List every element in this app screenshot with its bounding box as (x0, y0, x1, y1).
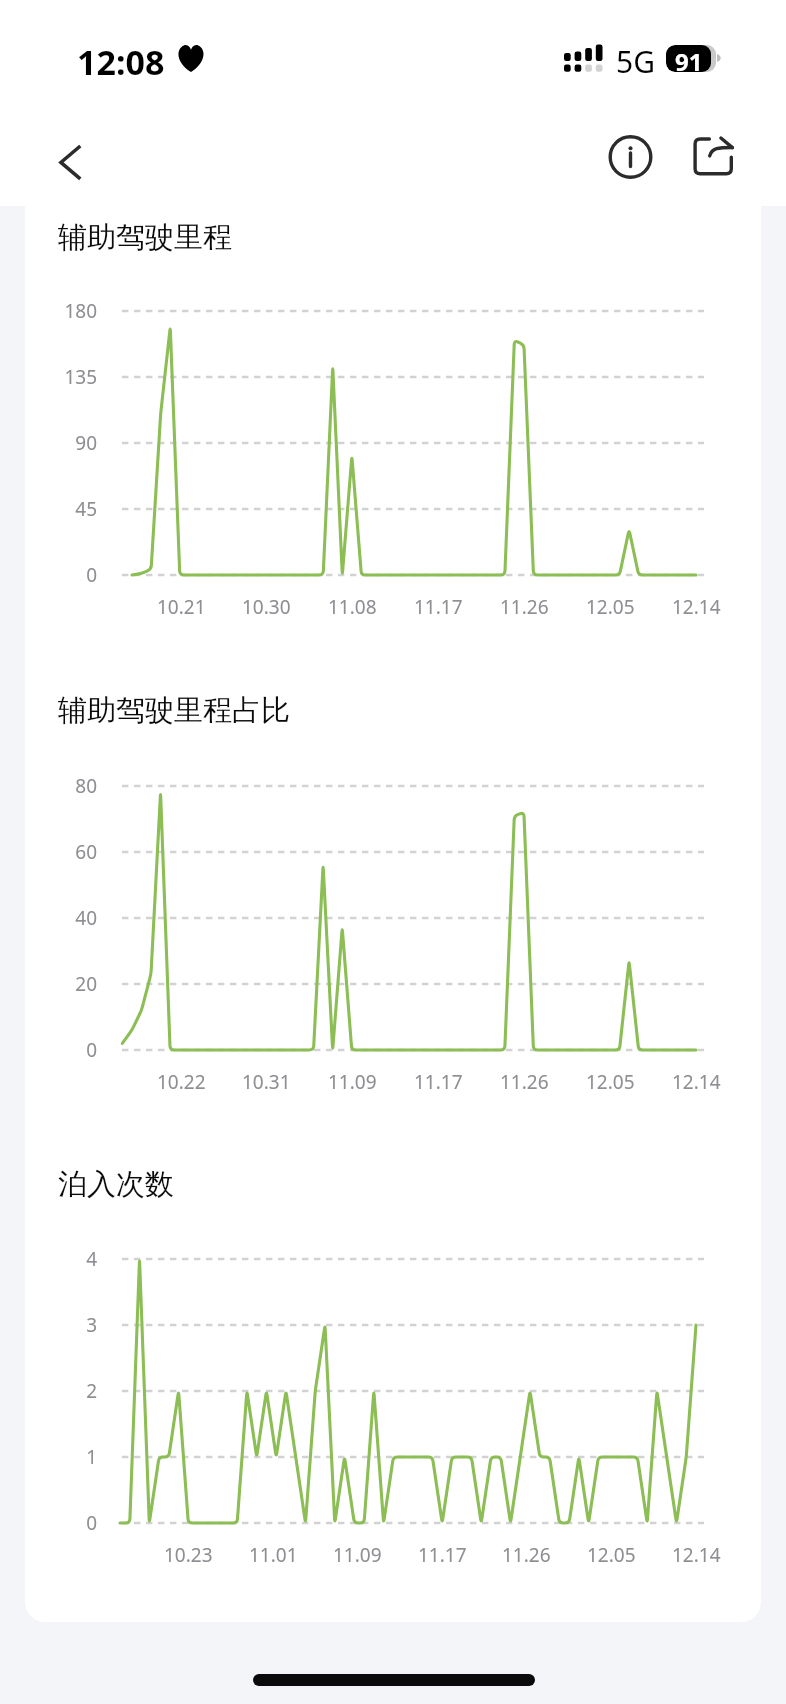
staticText: 45 (75, 496, 97, 522)
staticText: 辅助驾驶里程 (58, 219, 232, 256)
button[interactable]: Back (38, 130, 94, 194)
staticText: 0 (86, 562, 97, 588)
staticText: 12.14 (672, 594, 721, 620)
staticText: 4 (86, 1246, 97, 1272)
staticText: 12.05 (587, 1542, 636, 1568)
staticText: 2 (86, 1378, 97, 1404)
staticText: 11.17 (414, 594, 463, 620)
staticText: 10.21 (157, 594, 206, 620)
staticText: 20 (75, 971, 97, 997)
staticText: 12.14 (672, 1069, 721, 1095)
staticText: 11.09 (328, 1069, 377, 1095)
staticText: 60 (75, 839, 97, 865)
staticText: 90 (75, 430, 97, 456)
staticText: 1 (86, 1444, 97, 1470)
staticText: 泊入次数 (58, 1166, 174, 1203)
staticText: 11.26 (502, 1542, 551, 1568)
staticText: 10.23 (164, 1542, 213, 1568)
staticText: 10.31 (242, 1069, 291, 1095)
staticText: 11.09 (333, 1542, 382, 1568)
staticText: 40 (75, 905, 97, 931)
staticText: 80 (75, 773, 97, 799)
staticText: 11.17 (414, 1069, 463, 1095)
staticText: 10.22 (157, 1069, 206, 1095)
staticText: 135 (64, 364, 97, 390)
staticText: 12.14 (672, 1542, 721, 1568)
staticText: 0 (86, 1510, 97, 1536)
staticText: 辅助驾驶里程占比 (58, 692, 290, 729)
staticText: 11.17 (418, 1542, 467, 1568)
staticText: 91 (675, 45, 703, 72)
staticText: 11.26 (500, 1069, 549, 1095)
staticText: 11.01 (249, 1542, 298, 1568)
staticText: 3 (86, 1312, 97, 1338)
staticText: 12:08 (77, 39, 165, 85)
button[interactable]: Info (598, 125, 662, 189)
button[interactable]: Share (683, 125, 747, 189)
staticText: 5G (616, 41, 655, 82)
staticText: 11.08 (328, 594, 377, 620)
staticText: 0 (86, 1037, 97, 1063)
staticText: 12.05 (586, 594, 635, 620)
staticText: 180 (64, 298, 97, 324)
staticText: 12.05 (586, 1069, 635, 1095)
staticText: 10.30 (242, 594, 291, 620)
staticText: 11.26 (500, 594, 549, 620)
